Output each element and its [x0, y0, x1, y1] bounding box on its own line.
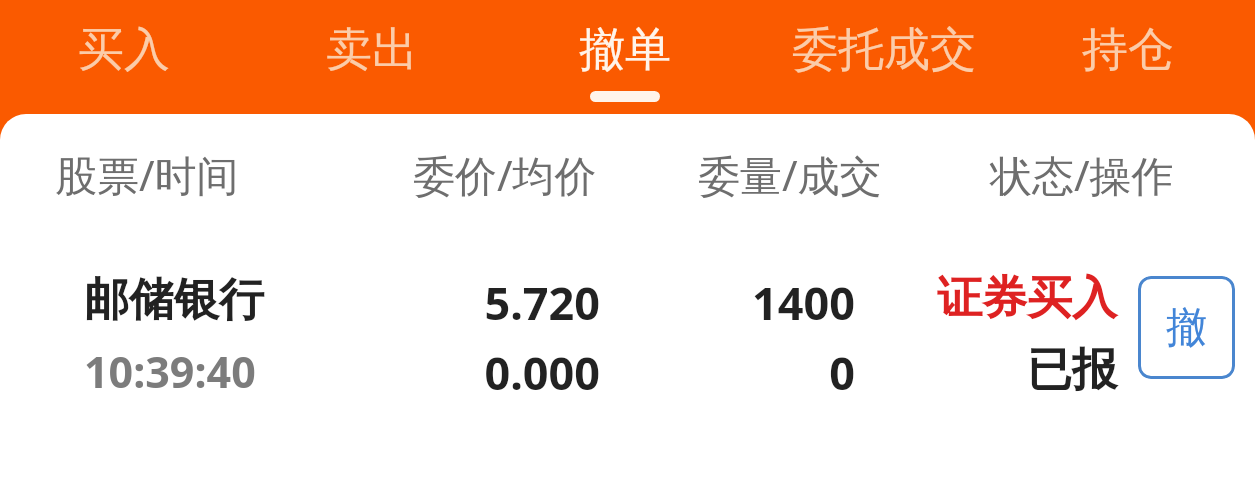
staticText: 撤: [1166, 302, 1207, 354]
staticText: 0: [829, 342, 855, 403]
staticText: 委托成交: [792, 21, 976, 79]
staticText: 0.000: [484, 342, 600, 403]
button[interactable]: 撤单: [505, 8, 745, 92]
button[interactable]: 卖出: [252, 8, 492, 92]
staticText: 邮储银行: [84, 272, 264, 329]
staticText: 5.720: [484, 272, 600, 333]
staticText: 1400: [752, 272, 855, 333]
button[interactable]: 持仓: [1008, 8, 1248, 92]
button[interactable]: 买入: [4, 8, 244, 92]
button[interactable]: 邮储银行: [0, 264, 1255, 444]
staticText: 委价/均价: [413, 146, 597, 203]
staticText: 委量/成交: [698, 146, 882, 203]
staticText: 买入: [78, 21, 170, 79]
staticText: 卖出: [326, 21, 418, 79]
staticText: 持仓: [1082, 21, 1174, 79]
staticText: 状态/操作: [990, 146, 1174, 203]
button[interactable]: 撤单 Cancel order: [1138, 276, 1235, 379]
staticText: 10:39:40: [84, 342, 256, 401]
staticText: 撤单: [579, 21, 671, 79]
staticText: 已报: [1027, 342, 1117, 399]
staticText: 股票/时间: [55, 146, 239, 203]
button[interactable]: 委托成交: [764, 8, 1004, 92]
staticText: 证券买入: [937, 270, 1117, 327]
